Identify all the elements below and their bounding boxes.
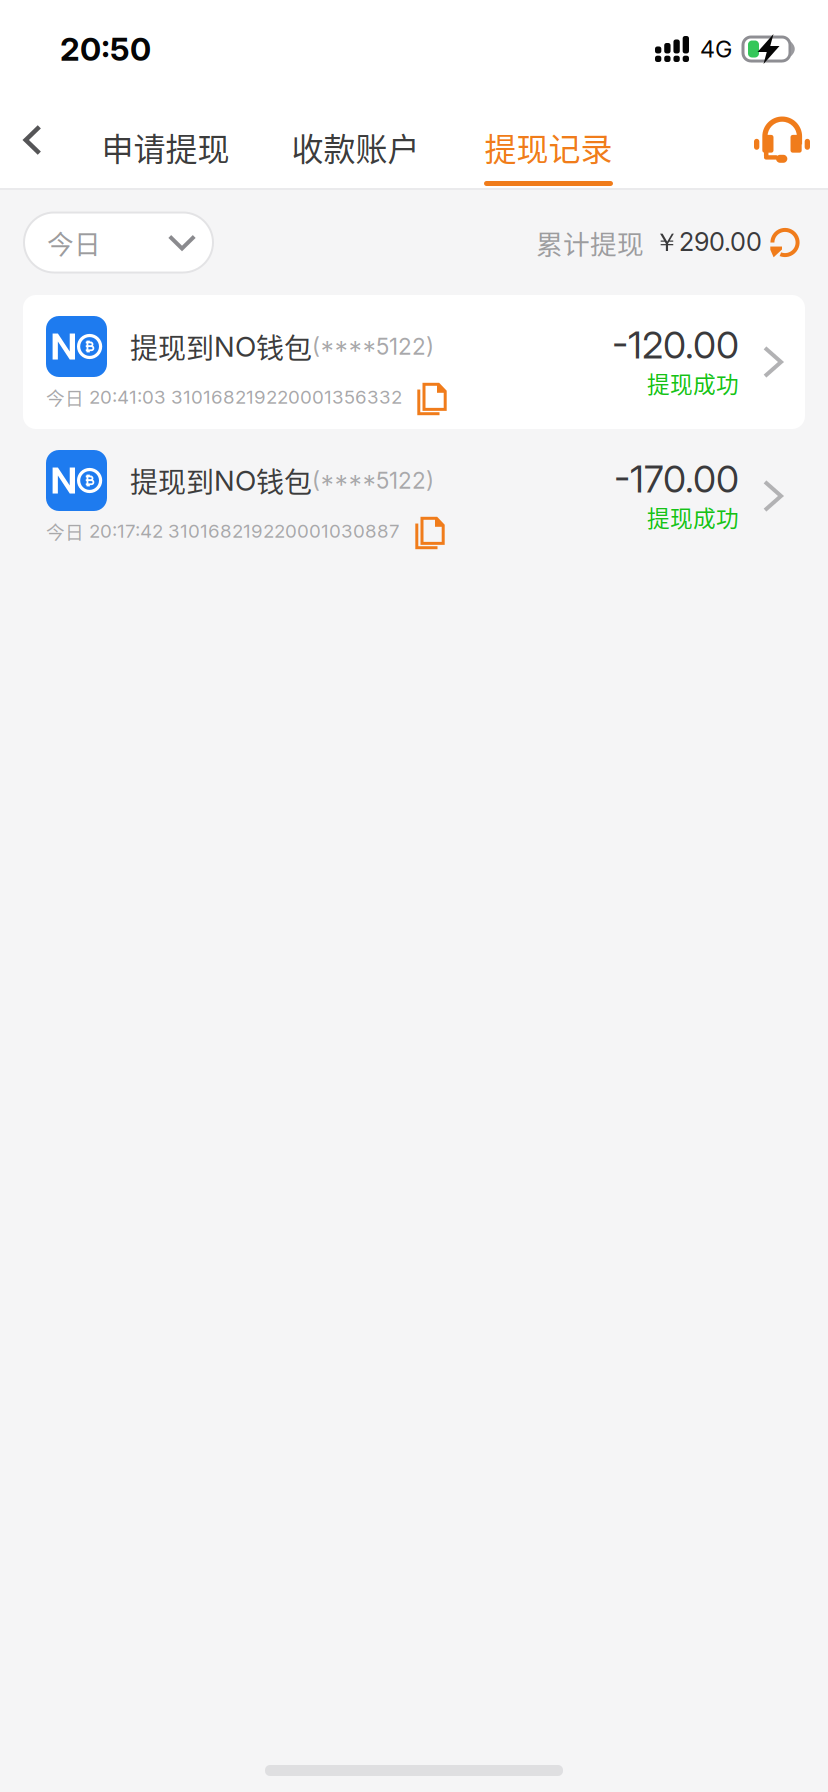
staticText: 钱包 [256, 460, 312, 501]
staticText: 今日 [47, 223, 101, 262]
staticText: 累计提现 [536, 223, 644, 262]
staticText: -170.00 [614, 456, 739, 502]
button[interactable]: 提现到 [23, 429, 805, 563]
staticText: -120.00 [612, 322, 739, 368]
staticText: 提现成功 [647, 367, 739, 399]
staticText: 今日 [46, 383, 84, 410]
staticText: 20:50 [60, 30, 151, 68]
staticText: 4G [700, 35, 732, 63]
staticText: NO [214, 464, 256, 497]
staticText: 20:17:42 310168219220001030887 [84, 520, 400, 542]
staticText: 今日 [46, 517, 84, 544]
staticText: NO [214, 330, 256, 363]
button[interactable]: Back [0, 92, 93, 188]
staticText: (****5122) [312, 467, 434, 494]
staticText: 申请提现 [101, 124, 229, 170]
staticText: (****5122) [312, 333, 434, 360]
button[interactable]: 今日 [24, 212, 213, 272]
button[interactable]: Refresh [762, 227, 800, 257]
staticText: 提现记录 [484, 124, 612, 170]
button[interactable]: 收款账户 [283, 92, 428, 188]
staticText: 提现成功 [647, 501, 739, 533]
button[interactable]: 申请提现 [93, 92, 238, 188]
staticText: 提现到 [130, 460, 214, 501]
button[interactable]: 提现到 [23, 295, 805, 429]
staticText: 提现到 [130, 326, 214, 367]
staticText: 钱包 [256, 326, 312, 367]
button[interactable]: 提现记录 [476, 92, 621, 188]
button[interactable]: Customer service [676, 92, 828, 188]
staticText: 收款账户 [291, 124, 419, 170]
staticText: ￥290.00 [654, 226, 762, 259]
staticText: 20:41:03 310168219220001356332 [84, 386, 402, 408]
